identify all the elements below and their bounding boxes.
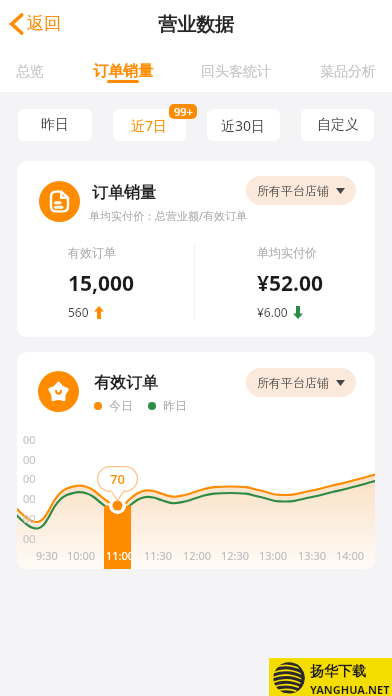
staticText: 总览	[16, 63, 44, 81]
staticText: 回头客统计	[201, 63, 271, 81]
staticText: 9:30	[36, 548, 58, 563]
staticText: 扬华下载	[310, 663, 366, 681]
staticText: 00	[23, 432, 36, 447]
staticText: 13:00	[259, 548, 288, 563]
staticText: 560	[68, 304, 89, 320]
staticText: 99+	[174, 104, 193, 119]
staticText: 15,000	[68, 269, 135, 298]
staticText: 00	[23, 531, 36, 546]
button[interactable]: 订单销量	[93, 47, 153, 92]
staticText: 12:30	[221, 548, 250, 563]
staticText: 00	[23, 452, 36, 467]
staticText: 70	[110, 470, 125, 488]
staticText: 有效订单	[68, 245, 116, 260]
staticText: 11:30	[144, 548, 173, 563]
staticText: 近30日	[221, 116, 266, 135]
staticText: 返回	[27, 13, 61, 34]
staticText: 14:00	[336, 548, 365, 563]
staticText: 00	[23, 471, 36, 486]
button[interactable]: 总览	[16, 47, 44, 92]
staticText: 单均实付价	[257, 245, 317, 260]
button[interactable]: 昨日	[18, 109, 92, 141]
staticText: YANGHUA.NET	[310, 682, 390, 696]
button[interactable]: 所有平台店铺	[246, 368, 356, 397]
staticText: 订单销量	[93, 62, 153, 81]
button[interactable]: 返回	[5, 5, 66, 42]
staticText: 00	[23, 491, 36, 506]
button[interactable]: 近7日	[113, 109, 186, 141]
staticText: 营业数据	[158, 13, 234, 37]
staticText: ¥52.00	[257, 269, 323, 298]
staticText: 昨日	[163, 398, 187, 413]
staticText: 所有平台店铺	[257, 183, 329, 198]
staticText: 订单销量	[92, 183, 156, 203]
staticText: 所有平台店铺	[257, 375, 329, 390]
button[interactable]: 所有平台店铺	[246, 176, 356, 205]
button[interactable]: 自定义	[301, 109, 374, 141]
staticText: 昨日	[41, 116, 69, 134]
staticText: ¥6.00	[257, 304, 288, 320]
button[interactable]: 回头客统计	[201, 47, 271, 92]
staticText: 近7日	[131, 116, 168, 135]
button[interactable]: 近30日	[207, 109, 280, 141]
staticText: 单均实付价：总营业额/有效订单	[89, 208, 248, 223]
staticText: 菜品分析	[320, 63, 376, 81]
button[interactable]: 菜品分析	[320, 47, 376, 92]
staticText: 10:00	[67, 548, 96, 563]
staticText: 11:00	[106, 548, 135, 563]
staticText: 13:30	[298, 548, 327, 563]
staticText: 今日	[109, 398, 133, 413]
staticText: 有效订单	[94, 373, 158, 393]
staticText: 自定义	[317, 116, 359, 134]
staticText: 00	[23, 511, 36, 526]
staticText: 12:00	[183, 548, 212, 563]
